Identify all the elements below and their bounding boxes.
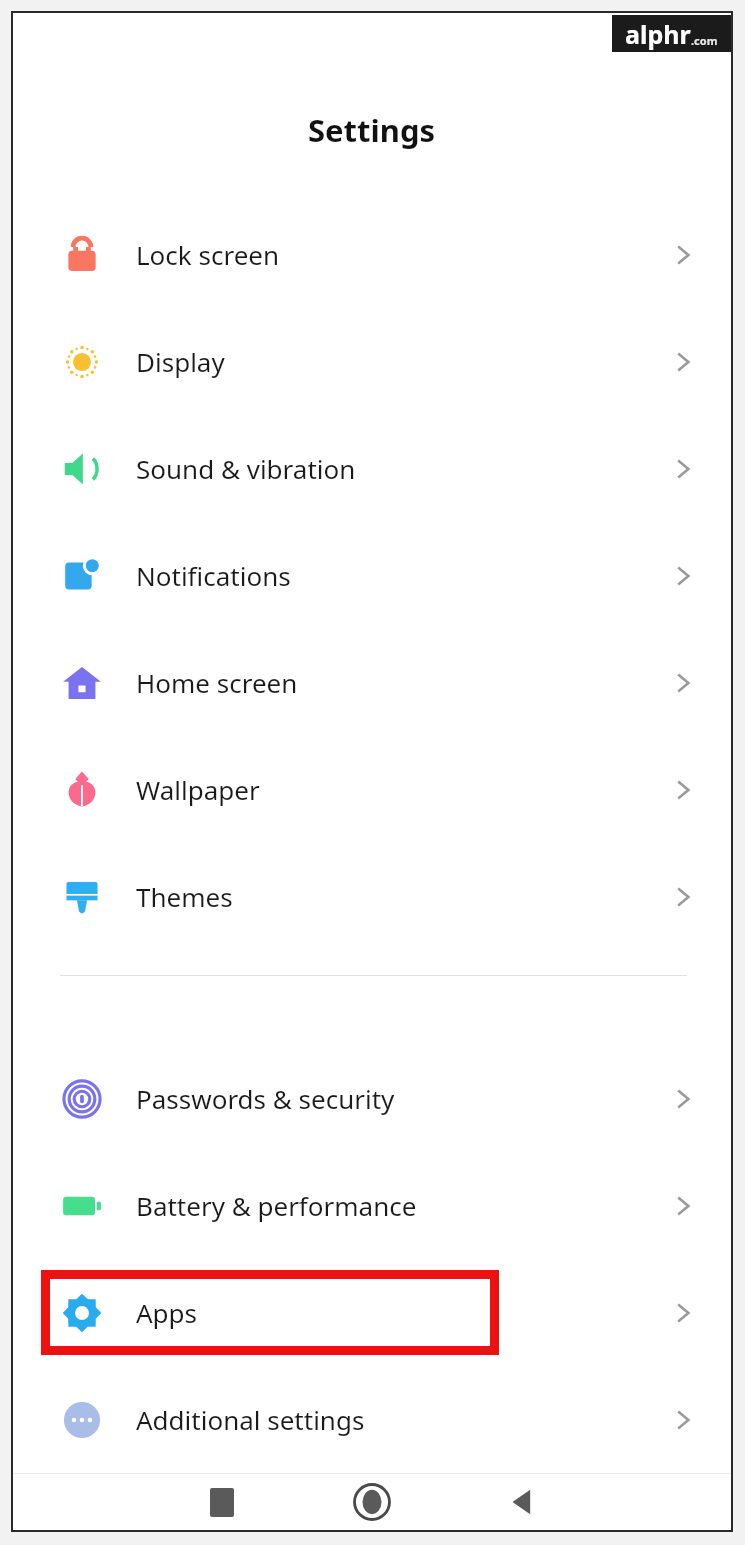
staticText: Apps bbox=[136, 1295, 198, 1330]
staticText: Wallpaper bbox=[136, 772, 260, 807]
staticText: Battery & performance bbox=[136, 1188, 417, 1223]
button[interactable]: Additional settings bbox=[13, 1366, 731, 1473]
button[interactable]: Themes bbox=[13, 843, 731, 950]
button[interactable]: Recent apps bbox=[186, 1474, 258, 1530]
button[interactable]: Passwords & security bbox=[13, 1045, 731, 1152]
staticText: Display bbox=[136, 344, 225, 379]
button[interactable]: Battery & performance bbox=[13, 1152, 731, 1259]
staticText: Themes bbox=[136, 879, 233, 914]
button[interactable]: Wallpaper bbox=[13, 736, 731, 843]
button[interactable]: Notifications bbox=[13, 522, 731, 629]
staticText: Settings bbox=[308, 109, 436, 151]
button[interactable]: Display bbox=[13, 308, 731, 415]
staticText: Sound & vibration bbox=[136, 451, 356, 486]
button[interactable]: Lock screen bbox=[13, 201, 731, 308]
button[interactable]: Sound & vibration bbox=[13, 415, 731, 522]
staticText: Home screen bbox=[136, 665, 298, 700]
staticText: .com bbox=[691, 33, 718, 48]
button[interactable]: Home bbox=[336, 1474, 408, 1530]
button[interactable]: Back bbox=[486, 1474, 558, 1530]
staticText: Lock screen bbox=[136, 237, 280, 272]
staticText: Additional settings bbox=[136, 1402, 365, 1437]
staticText: Passwords & security bbox=[136, 1081, 395, 1116]
button[interactable]: Home screen bbox=[13, 629, 731, 736]
button[interactable]: Apps bbox=[13, 1259, 731, 1366]
staticText: alphr bbox=[625, 17, 691, 51]
staticText: Notifications bbox=[136, 558, 291, 593]
